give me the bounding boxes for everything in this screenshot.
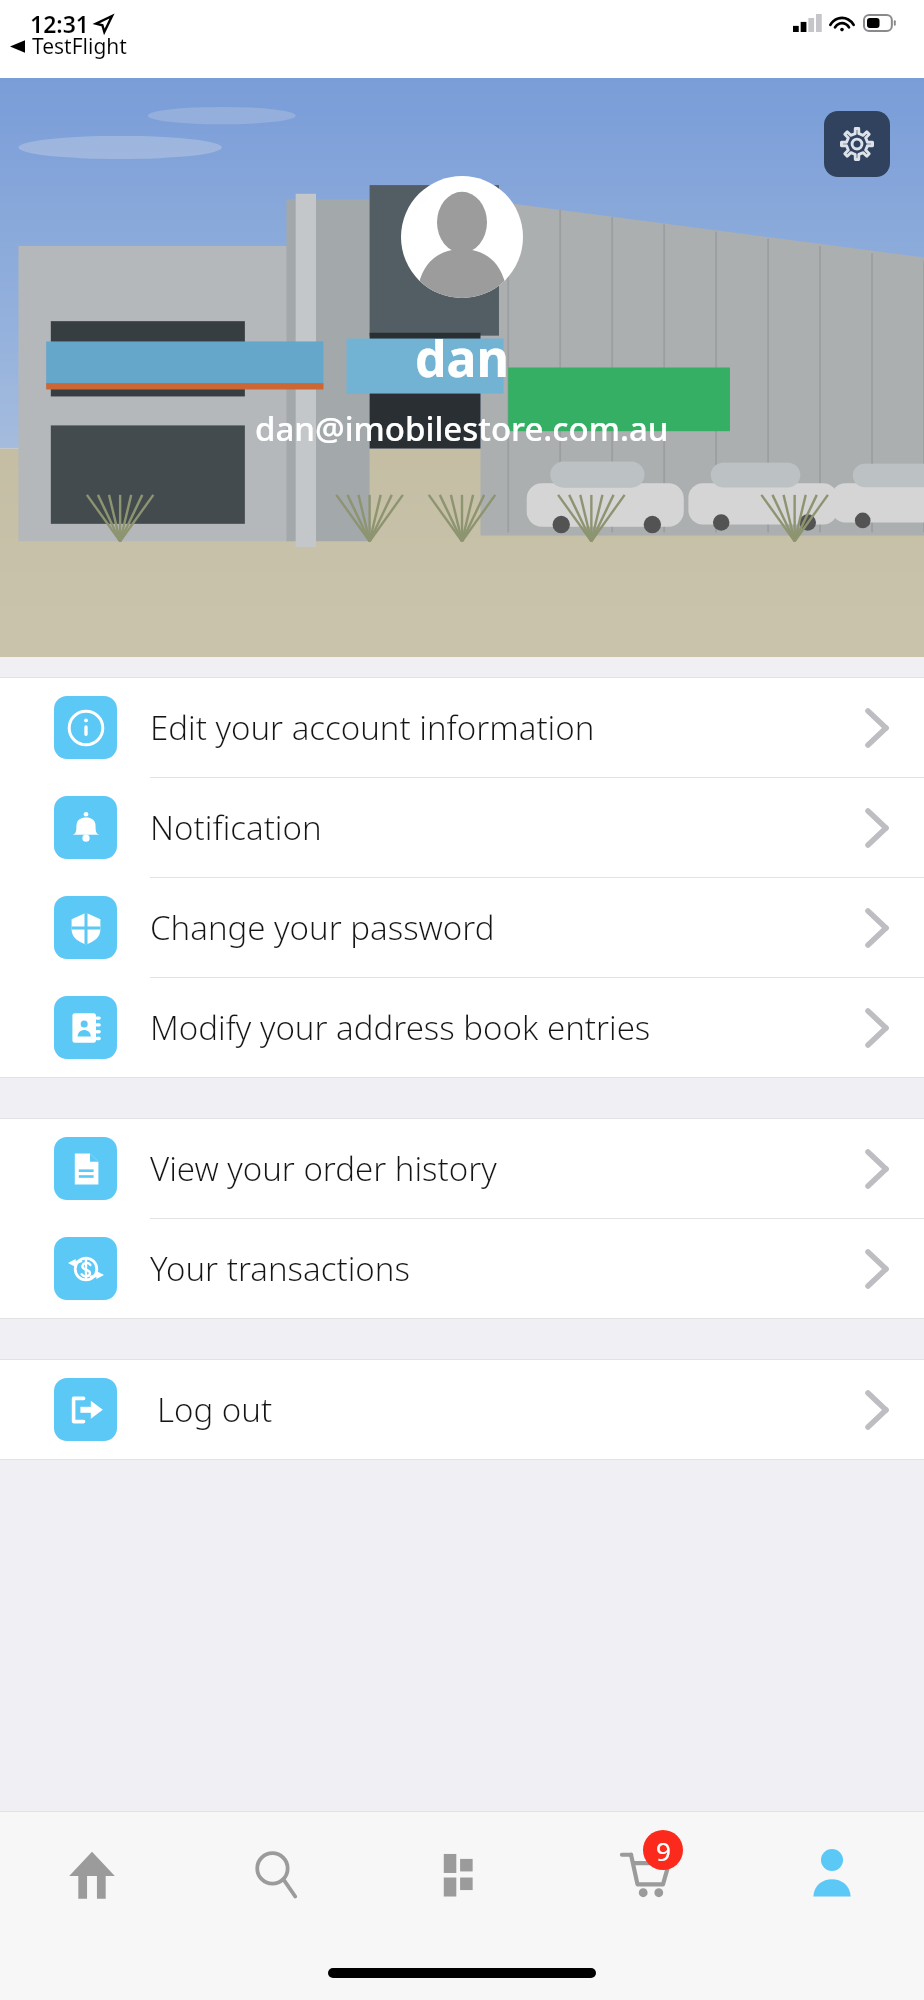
button[interactable]: Home xyxy=(0,1838,184,1930)
staticText: View your order history xyxy=(150,1146,497,1191)
staticText: dan@imobilestore.com.au xyxy=(255,406,669,451)
staticText: Modify your address book entries xyxy=(150,1005,651,1050)
button[interactable]: Notification xyxy=(0,778,924,877)
button[interactable]: Modify your address book entries xyxy=(0,978,924,1077)
staticText: TestFlight xyxy=(32,32,127,61)
staticText: Change your password xyxy=(150,905,495,950)
button[interactable]: Account xyxy=(739,1838,924,1930)
staticText: 9 xyxy=(656,1833,671,1868)
button[interactable]: Search xyxy=(184,1838,369,1930)
button[interactable]: View your order history xyxy=(0,1119,924,1218)
button[interactable]: Log out xyxy=(0,1360,924,1459)
staticText: Log out xyxy=(157,1387,273,1432)
staticText: Notification xyxy=(150,805,322,850)
staticText: dan xyxy=(415,324,510,392)
button[interactable]: Categories xyxy=(369,1838,554,1930)
staticText: Your transactions xyxy=(150,1246,410,1291)
button[interactable]: Settings xyxy=(824,111,890,177)
staticText: 12:31 xyxy=(30,8,89,39)
staticText: Edit your account information xyxy=(150,705,595,750)
button[interactable]: Cart, 9 items xyxy=(554,1838,739,1930)
button[interactable]: Your transactions xyxy=(0,1219,924,1318)
button[interactable]: Edit your account information xyxy=(0,678,924,777)
button[interactable]: Change your password xyxy=(0,878,924,977)
